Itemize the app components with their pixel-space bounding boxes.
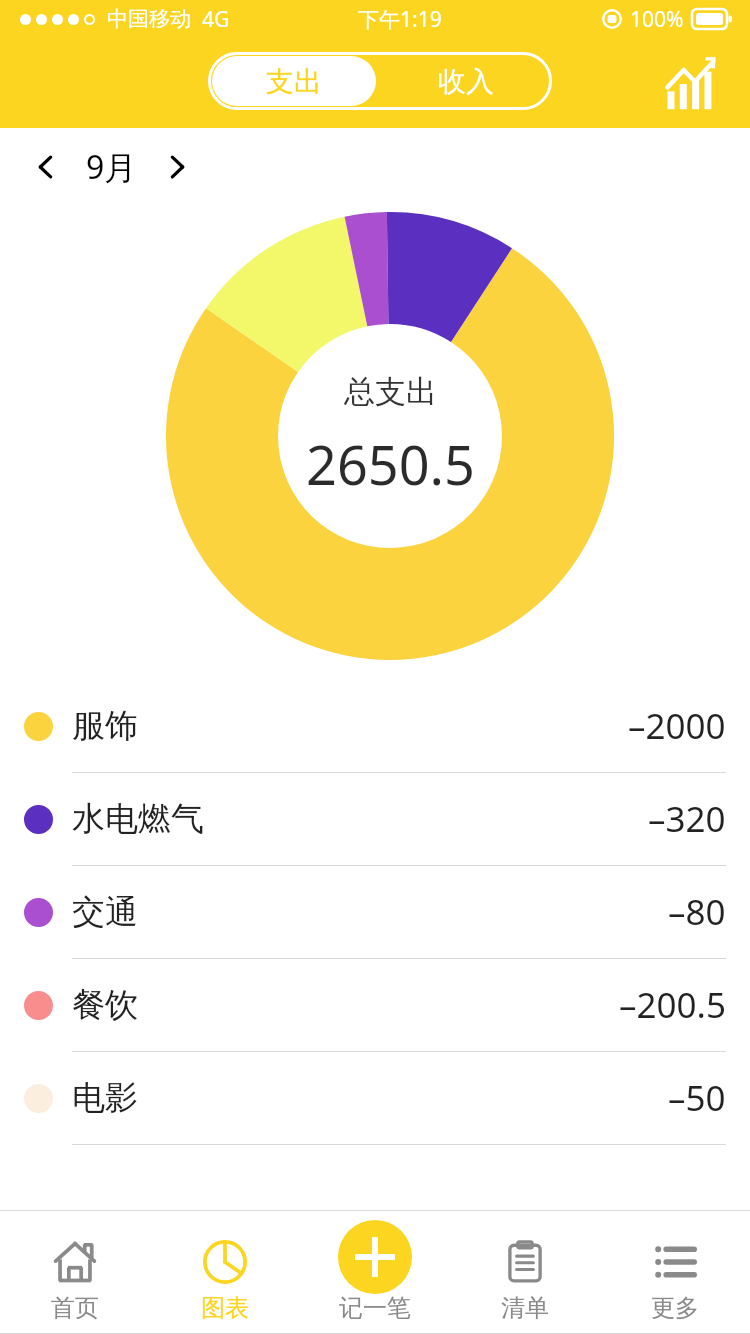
staticText: 餐饮 [72,984,138,1026]
button[interactable]: 支出 [212,56,376,106]
staticText: 中国移动 [107,6,191,32]
staticText: –50 [668,1074,726,1122]
button[interactable]: 电影 [0,1052,750,1144]
button[interactable]: Statistics [663,56,719,112]
staticText: 2650.5 [306,427,475,501]
staticText: 电影 [72,1077,138,1119]
staticText: 水电燃气 [72,798,204,840]
button[interactable]: 交通 [0,866,750,958]
staticText: 4G [202,5,230,34]
staticText: –2000 [628,702,726,750]
staticText: 交通 [72,891,138,933]
button[interactable]: 餐饮 [0,959,750,1051]
staticText: –320 [648,795,726,843]
staticText: 记一笔 [339,1293,411,1323]
staticText: 首页 [51,1293,99,1323]
staticText: 更多 [651,1293,699,1323]
staticText: 100% [630,5,684,34]
button[interactable]: Previous month [22,143,70,191]
staticText: 9月 [86,145,137,189]
staticText: 服饰 [72,705,138,747]
button[interactable]: 服饰 [0,680,750,772]
staticText: 清单 [501,1293,549,1323]
button[interactable]: 图表 [150,1234,300,1334]
button[interactable]: Next month [153,143,201,191]
button[interactable]: 更多 [600,1234,750,1334]
staticText: –80 [668,888,726,936]
staticText: 图表 [201,1293,249,1323]
button[interactable]: 首页 [0,1234,150,1334]
staticText: 支出 [266,64,322,99]
staticText: 下午1:19 [358,5,442,34]
button[interactable]: 收入 [380,52,552,110]
button[interactable]: 水电燃气 [0,773,750,865]
staticText: 总支出 [344,372,437,411]
button[interactable]: Add record [338,1220,412,1294]
button[interactable]: 记一笔 [300,1234,450,1334]
button[interactable]: 清单 [450,1234,600,1334]
staticText: –200.5 [619,981,726,1029]
staticText: 收入 [438,64,494,99]
